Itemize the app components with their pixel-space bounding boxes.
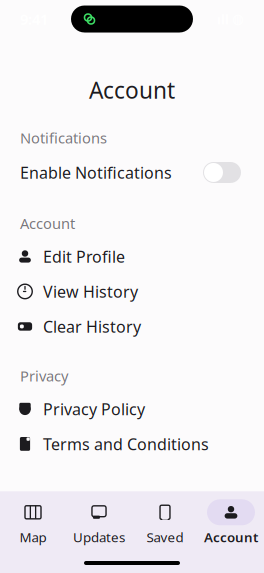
button[interactable]: Clear History [0,309,264,344]
button[interactable]: Saved [132,491,198,552]
staticText: Map [19,528,46,546]
staticText: Saved [146,528,183,546]
staticText: Terms and Conditions [43,433,209,454]
button[interactable]: View History [0,274,264,309]
button[interactable]: Terms and Conditions [0,426,264,461]
staticText: Privacy [20,366,68,385]
button[interactable]: Privacy Policy [0,391,264,426]
button[interactable]: Enable Notifications [0,154,264,190]
staticText: Privacy Policy [43,398,145,419]
staticText: Notifications [20,128,107,147]
staticText: View History [43,281,138,302]
staticText: Enable Notifications [20,162,172,183]
staticText: Edit Profile [43,246,125,267]
button[interactable]: Account [198,491,264,552]
staticText: Clear History [43,316,141,337]
button[interactable]: Map [0,491,66,552]
staticText: Updates [73,528,125,546]
button[interactable]: Updates [66,491,132,552]
staticText: Account [20,213,75,233]
button[interactable]: Edit Profile [0,239,264,274]
staticText: Account [89,75,175,105]
staticText: Account [204,528,258,546]
